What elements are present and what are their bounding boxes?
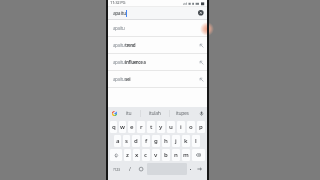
staticText: j xyxy=(175,137,177,145)
button[interactable]: z xyxy=(124,149,131,161)
button[interactable]: apa itu influence a xyxy=(108,54,207,71)
button[interactable]: b xyxy=(162,149,170,161)
button[interactable]: y xyxy=(157,121,165,133)
staticText: v xyxy=(154,151,158,159)
button[interactable]: k xyxy=(182,135,190,147)
staticText: f xyxy=(145,137,148,145)
staticText: b xyxy=(164,151,168,159)
button[interactable]: / xyxy=(124,162,135,176)
staticText: x xyxy=(135,151,139,159)
button[interactable] xyxy=(112,111,117,116)
staticText: y xyxy=(159,123,163,131)
button[interactable] xyxy=(193,162,206,176)
button[interactable] xyxy=(110,149,122,161)
staticText: apa itu xyxy=(113,25,125,31)
button[interactable]: f xyxy=(142,135,150,147)
button[interactable] xyxy=(199,111,204,116)
staticText: itulah xyxy=(149,110,161,117)
button[interactable]: e xyxy=(128,121,135,133)
staticText: t xyxy=(150,123,153,131)
staticText: itu xyxy=(126,110,132,117)
button[interactable]: w xyxy=(119,121,126,133)
button[interactable]: o xyxy=(187,121,195,133)
button[interactable]: c xyxy=(142,149,150,161)
staticText: k xyxy=(184,137,188,145)
staticText: g xyxy=(154,137,158,145)
staticText: a xyxy=(116,137,120,145)
button[interactable]: apa itu sei xyxy=(108,71,207,88)
button[interactable]: p xyxy=(197,121,205,133)
button[interactable]: g xyxy=(152,135,160,147)
staticText: apa itu trend xyxy=(113,42,136,48)
button[interactable]: d xyxy=(132,135,140,147)
staticText: / xyxy=(129,166,131,173)
staticText: z xyxy=(126,151,129,159)
button[interactable]: q xyxy=(110,121,117,133)
staticText: m xyxy=(183,151,189,159)
staticText: w xyxy=(120,123,125,131)
button[interactable]: x xyxy=(133,149,140,161)
button[interactable] xyxy=(135,162,146,176)
staticText: l xyxy=(195,137,197,145)
staticText: c xyxy=(144,151,148,159)
staticText: i xyxy=(180,123,182,131)
button[interactable]: itulah xyxy=(141,107,169,120)
button[interactable]: j xyxy=(172,135,180,147)
staticText: q xyxy=(112,123,116,131)
button[interactable]: r xyxy=(137,121,145,133)
staticText: s xyxy=(125,137,128,145)
button[interactable]: u xyxy=(167,121,175,133)
staticText: r xyxy=(140,123,143,131)
button[interactable]: l xyxy=(192,135,200,147)
staticText: n xyxy=(174,151,178,159)
button[interactable]: v xyxy=(152,149,160,161)
button[interactable]: apa itu xyxy=(113,6,204,20)
staticText: 11:32 PG xyxy=(110,0,126,6)
button[interactable]: itu xyxy=(118,107,140,120)
button[interactable] xyxy=(188,162,193,176)
staticText: itupes xyxy=(176,110,189,117)
button[interactable]: a xyxy=(114,135,121,147)
staticText: p xyxy=(199,123,203,131)
button[interactable]: h xyxy=(162,135,170,147)
button[interactable]: apa itu xyxy=(108,20,207,37)
button[interactable] xyxy=(198,10,204,16)
button[interactable]: ?123 xyxy=(109,162,124,176)
button[interactable]: itupes xyxy=(170,107,195,120)
staticText: h xyxy=(164,137,168,145)
staticText: u xyxy=(169,123,173,131)
button[interactable]: s xyxy=(123,135,130,147)
button[interactable]: apa itu trend xyxy=(108,37,207,54)
staticText: o xyxy=(189,123,193,131)
button[interactable] xyxy=(192,149,205,161)
button[interactable]: t xyxy=(147,121,155,133)
staticText: apa itu sei xyxy=(113,76,131,82)
staticText: d xyxy=(134,137,138,145)
button[interactable]: n xyxy=(172,149,180,161)
staticText: ?123 xyxy=(113,167,120,172)
staticText: apa itu influence a xyxy=(113,59,146,65)
staticText: e xyxy=(130,123,134,131)
staticText: apa itu xyxy=(113,10,126,17)
button[interactable]: i xyxy=(177,121,185,133)
button[interactable]: m xyxy=(182,149,190,161)
